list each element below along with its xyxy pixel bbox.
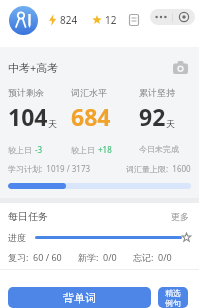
staticText: 预计剩余 [8,87,44,98]
button[interactable]: 背单词 [8,287,151,308]
button[interactable]: 更多 [171,211,191,222]
staticText: 精选 [165,288,181,298]
staticText: 824 [60,13,78,27]
staticText: 天 [48,118,57,129]
button[interactable]: 累计坚持 [139,87,191,154]
staticText: 复习: 60 / 60 [8,251,62,263]
staticText: 今日未完成 [139,144,179,154]
staticText: 背单词 [63,291,96,305]
staticText: 684 [71,101,111,132]
button[interactable] [173,9,195,25]
button[interactable]: 精选 [158,287,188,308]
staticText: 进度 [8,232,26,243]
staticText: 较上日 [71,144,98,155]
staticText: 104 [8,101,48,132]
button[interactable] [150,9,172,25]
button[interactable] [173,61,188,74]
staticText: 例句 [165,298,181,308]
staticText: 较上日 [8,144,35,155]
staticText: 累计坚持 [139,87,175,98]
button[interactable]: 中考+高考 [8,60,191,75]
staticText: 每日任务 [8,210,48,223]
staticText: 词汇量上限: 1600 [126,163,191,174]
button[interactable] [9,6,38,35]
staticText: 忘记: 0/0 [133,251,172,263]
staticText: +18 [98,144,112,155]
button[interactable]: 词汇水平 [71,87,130,155]
staticText: 新学: 0/0 [78,251,117,263]
staticText: -3 [35,144,43,155]
staticText: 学习计划: 1019 / 3173 [8,163,91,174]
button[interactable]: 预计剩余 [8,87,69,155]
button[interactable] [129,14,139,26]
button[interactable]: 12 [92,13,117,27]
staticText: 92 [139,101,166,132]
button[interactable]: 824 [48,13,78,27]
staticText: 天 [166,118,175,129]
staticText: 词汇水平 [71,87,107,98]
staticText: 12 [105,13,117,27]
staticText: 中考+高考 [8,60,59,75]
